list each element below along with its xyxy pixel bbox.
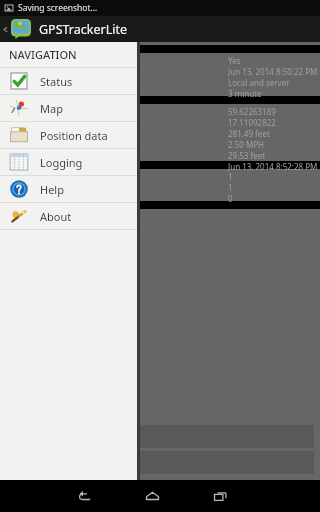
staticText: 281.49 feet — [228, 128, 270, 139]
staticText: 1 — [228, 182, 233, 193]
staticText: Status — [40, 74, 73, 89]
staticText: Saving screenshot… — [18, 2, 98, 14]
staticText: Local and server — [228, 77, 290, 88]
staticText: Jun 13, 2014 8:52:28 PM — [228, 161, 318, 172]
staticText: 29.53 feet — [228, 150, 266, 161]
staticText: Jun 13, 2014 8:50:22 PM — [228, 66, 318, 77]
staticText: GPSTrackerLite — [39, 21, 128, 38]
button[interactable]: Position data — [0, 122, 137, 148]
staticText: 17.11092822 — [228, 117, 276, 128]
other: Navigate up — [2, 26, 9, 33]
button[interactable]: Start logging — [2, 425, 314, 448]
button[interactable]: Map — [0, 95, 137, 121]
button[interactable]: Recent apps — [204, 480, 236, 512]
button[interactable]: Help — [0, 176, 137, 202]
staticText: Yes — [228, 55, 241, 66]
staticText: Position data — [40, 128, 108, 143]
button[interactable]: About — [0, 203, 137, 229]
staticText: 3 minute — [228, 88, 262, 99]
staticText: Map — [40, 101, 63, 116]
staticText: Logging — [40, 155, 83, 170]
staticText: 0 — [228, 193, 233, 204]
button[interactable]: Back — [68, 480, 100, 512]
button[interactable]: Stop logging — [2, 451, 314, 474]
button[interactable]: Home — [136, 480, 168, 512]
button[interactable]: Logging — [0, 149, 137, 175]
staticText: Help — [40, 182, 64, 197]
button[interactable]: Status — [0, 68, 137, 94]
staticText: About — [40, 209, 72, 224]
staticText: NAVIGATION — [9, 47, 77, 62]
staticText: 2.50 MPH — [228, 139, 264, 150]
staticText: 1 — [228, 171, 233, 182]
staticText: 59.62263189 — [228, 106, 276, 117]
